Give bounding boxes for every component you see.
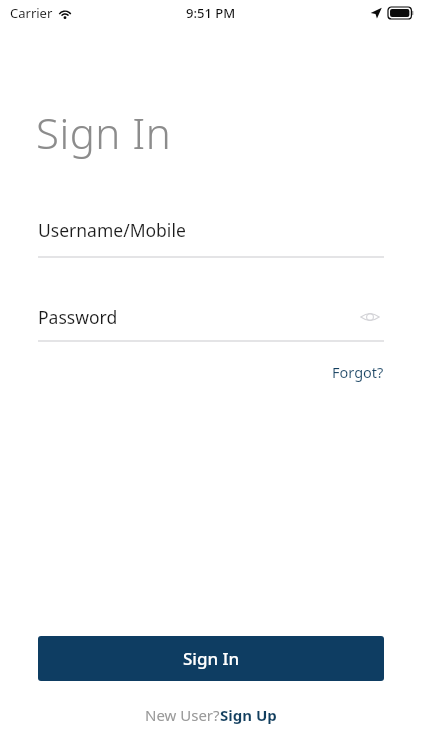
staticText: New User? [145, 705, 220, 725]
button[interactable]: Show password [356, 303, 384, 331]
staticText: Username/Mobile [38, 218, 186, 242]
button[interactable]: Forgot? [330, 358, 386, 386]
staticText: Forgot? [332, 362, 384, 382]
button[interactable]: Password [38, 303, 384, 331]
staticText: 9:51 PM [186, 4, 236, 22]
button[interactable]: Username/Mobile [38, 218, 384, 258]
button[interactable]: Sign In [38, 636, 384, 681]
staticText: Sign Up [220, 705, 277, 725]
staticText: Sign In [36, 104, 172, 161]
staticText: Sign In [183, 647, 240, 670]
button[interactable]: Sign Up [220, 705, 277, 725]
staticText: Password [38, 305, 118, 329]
staticText: Carrier [10, 4, 53, 22]
